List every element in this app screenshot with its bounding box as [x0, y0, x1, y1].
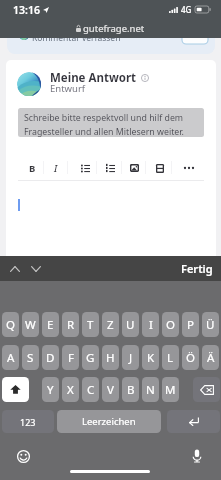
button[interactable]: N [142, 377, 159, 402]
staticText: Kommentar verfassen [32, 32, 121, 44]
button[interactable]: C [82, 377, 99, 402]
staticText: V [107, 382, 114, 398]
staticText: A [7, 350, 15, 366]
staticText: Fertig [181, 261, 213, 276]
button[interactable]: G [82, 345, 99, 370]
staticText: Entwurf [50, 82, 86, 95]
staticText: B [29, 162, 36, 175]
button[interactable]: X [62, 377, 79, 402]
button[interactable]: Numbered list [99, 157, 121, 179]
button[interactable]: 123 [2, 410, 54, 433]
staticText: Meine Antwort [50, 70, 137, 86]
staticText: F [68, 350, 74, 366]
button[interactable]: Ä [202, 345, 219, 370]
button[interactable]: Backspace [193, 377, 220, 402]
staticText: K [147, 350, 155, 366]
staticText: M [165, 382, 176, 398]
staticText: Ü [206, 317, 215, 333]
staticText: D [46, 350, 55, 366]
staticText: P [187, 317, 194, 333]
button[interactable]: A [2, 345, 19, 370]
staticText: B [127, 382, 135, 398]
button[interactable]: Shift [2, 377, 29, 402]
button[interactable]: P [182, 312, 199, 337]
button[interactable]: Italic [45, 157, 67, 179]
button[interactable]: E [42, 312, 59, 337]
staticText: Fragesteller und allen Mitlesern weiter. [24, 126, 184, 137]
button[interactable]: L [162, 345, 179, 370]
staticText: U [126, 317, 135, 333]
button[interactable]: R [62, 312, 79, 337]
staticText: 13:16 [13, 3, 40, 17]
button[interactable]: Dictation [187, 446, 207, 466]
staticText: H [106, 350, 115, 366]
staticText: C [87, 382, 95, 398]
staticText: Q [6, 317, 15, 333]
staticText: Ä [207, 350, 215, 366]
button[interactable]: K [142, 345, 159, 370]
staticText: Leerzeichen [82, 415, 136, 428]
button[interactable]: I [142, 312, 159, 337]
button[interactable]: F [62, 345, 79, 370]
staticText: J [129, 350, 133, 366]
staticText: Ö [186, 350, 195, 366]
button[interactable]: Leerzeichen [57, 410, 161, 433]
staticText: R [67, 317, 75, 333]
button[interactable]: Return [167, 410, 220, 433]
staticText: Schreibe bitte respektvoll und hilf dem [24, 112, 184, 124]
staticText: W [25, 317, 36, 333]
staticText: E [47, 317, 54, 333]
button[interactable]: T [82, 312, 99, 337]
staticText: L [167, 350, 174, 366]
staticText: T [87, 317, 94, 333]
button[interactable]: Z [102, 312, 119, 337]
button[interactable]: J [122, 345, 139, 370]
staticText: S [27, 350, 34, 366]
button[interactable]: M [162, 377, 179, 402]
button[interactable]: Q [2, 312, 19, 337]
button[interactable]: Bold [21, 157, 43, 179]
button[interactable]: S [22, 345, 39, 370]
button[interactable]: Ü [202, 312, 219, 337]
staticText: 123 [20, 416, 36, 428]
button[interactable]: More options [178, 157, 200, 179]
button[interactable]: Kommentar verfassen [7, 22, 215, 54]
button[interactable]: Ö [182, 345, 199, 370]
button[interactable]: Previous field [4, 256, 26, 281]
staticText: N [146, 382, 155, 398]
button[interactable]: Fertig [173, 256, 221, 281]
staticText: G [86, 350, 95, 366]
staticText: I [54, 162, 58, 175]
button[interactable]: H [102, 345, 119, 370]
button[interactable]: U [122, 312, 139, 337]
button[interactable]: Emoji keyboard [13, 446, 33, 466]
staticText: Y [47, 382, 54, 398]
button[interactable]: Bulleted list [74, 157, 96, 179]
button[interactable]: W [22, 312, 39, 337]
staticText: 4G [181, 4, 192, 15]
staticText: O [166, 317, 175, 333]
button[interactable]: Insert block [149, 157, 171, 179]
button[interactable]: Next field [25, 256, 47, 281]
button[interactable]: O [162, 312, 179, 337]
button[interactable]: D [42, 345, 59, 370]
button[interactable]: Y [42, 377, 59, 402]
staticText: gutefrage.net [83, 22, 145, 35]
button[interactable]: B [122, 377, 139, 402]
button[interactable]: V [102, 377, 119, 402]
button[interactable]: Insert image [123, 157, 145, 179]
staticText: Z [107, 317, 114, 333]
staticText: X [67, 382, 74, 398]
staticText: I [149, 317, 153, 333]
